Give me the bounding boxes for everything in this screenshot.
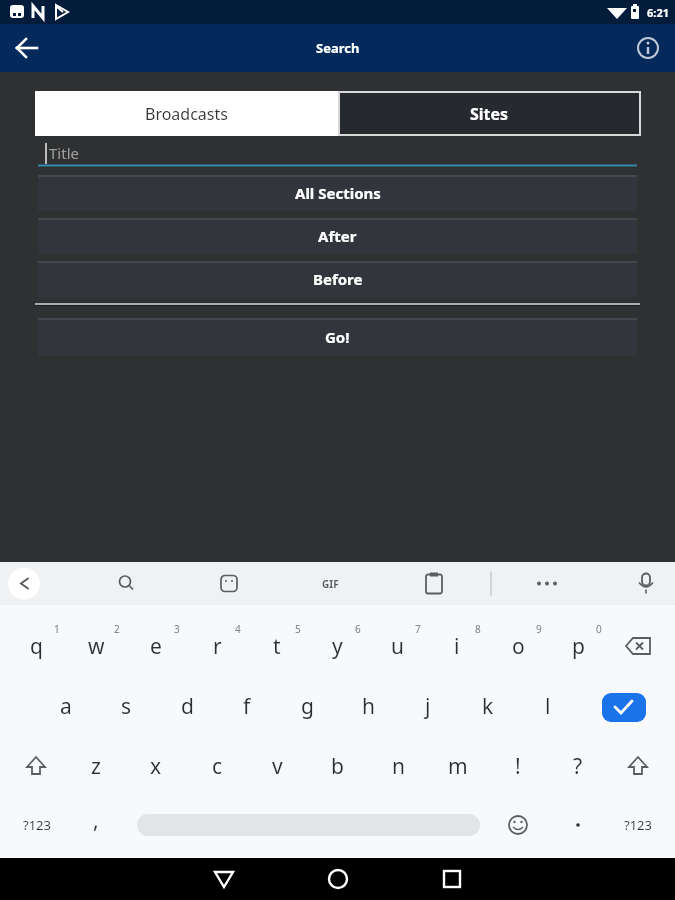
staticText: 9	[536, 622, 542, 636]
button[interactable]: !	[488, 736, 548, 796]
button[interactable]: Title	[38, 143, 637, 167]
button[interactable]	[626, 563, 666, 603]
button[interactable]: ?123	[610, 805, 666, 845]
button[interactable]	[608, 736, 668, 796]
staticText: d	[181, 692, 194, 721]
staticText: g	[301, 692, 314, 721]
staticText: !	[515, 752, 521, 781]
button[interactable]	[412, 858, 492, 900]
button[interactable]	[311, 563, 351, 603]
staticText: p	[572, 632, 585, 661]
button[interactable]: z	[66, 736, 126, 796]
button[interactable]: Sites	[338, 91, 641, 136]
button[interactable]: y	[307, 616, 367, 676]
staticText: 6:21	[647, 5, 669, 20]
button[interactable]	[13, 34, 41, 62]
staticText: o	[512, 632, 525, 661]
staticText: ?123	[23, 816, 51, 834]
button[interactable]: s	[96, 676, 156, 736]
staticText: k	[482, 692, 494, 721]
button[interactable]: w	[66, 616, 126, 676]
staticText: u	[391, 632, 404, 661]
button[interactable]	[184, 858, 264, 900]
button[interactable]: ,	[66, 790, 126, 850]
button[interactable]: v	[247, 736, 307, 796]
button[interactable]: e	[126, 616, 186, 676]
staticText: Search	[316, 39, 360, 57]
button[interactable]: b	[307, 736, 367, 796]
button[interactable]	[106, 563, 146, 603]
button[interactable]: Broadcasts	[35, 91, 338, 136]
staticText: GIF	[322, 577, 339, 591]
button[interactable]: g	[277, 676, 337, 736]
staticText: j	[425, 692, 431, 721]
staticText: s	[121, 692, 132, 721]
button[interactable]: Go!	[38, 318, 637, 356]
button[interactable]	[548, 795, 608, 855]
button[interactable]	[4, 563, 44, 603]
button[interactable]	[635, 35, 661, 61]
staticText: 0	[596, 622, 602, 636]
staticText: c	[212, 752, 223, 781]
button[interactable]	[414, 563, 454, 603]
staticText: Sites	[470, 103, 509, 125]
staticText: q	[30, 632, 43, 661]
button[interactable]: c	[187, 736, 247, 796]
button[interactable]	[488, 795, 548, 855]
button[interactable]: t	[247, 616, 307, 676]
button[interactable]: n	[368, 736, 428, 796]
button[interactable]: u	[367, 616, 427, 676]
staticText: Go!	[325, 327, 350, 347]
button[interactable]: a	[36, 676, 96, 736]
button[interactable]	[608, 616, 668, 676]
button[interactable]: i	[427, 616, 487, 676]
button[interactable]: m	[428, 736, 488, 796]
staticText: l	[545, 692, 551, 721]
button[interactable]: q	[6, 616, 66, 676]
staticText: n	[392, 752, 405, 781]
button[interactable]: ?	[548, 736, 608, 796]
staticText: a	[60, 692, 72, 721]
staticText: m	[448, 752, 468, 781]
staticText: e	[150, 632, 162, 661]
button[interactable]: d	[157, 676, 217, 736]
staticText: h	[362, 692, 375, 721]
staticText: b	[331, 752, 344, 781]
button[interactable]	[527, 563, 567, 603]
staticText: 4	[235, 622, 241, 636]
staticText: x	[150, 752, 162, 781]
button[interactable]: x	[126, 736, 186, 796]
staticText: i	[454, 632, 460, 661]
staticText: z	[91, 752, 101, 781]
staticText: f	[243, 692, 251, 721]
staticText: y	[332, 632, 343, 661]
button[interactable]	[594, 683, 650, 729]
button[interactable]	[298, 858, 378, 900]
staticText: t	[273, 632, 281, 661]
staticText: 2	[114, 622, 120, 636]
button[interactable]: Before	[38, 261, 637, 297]
button[interactable]	[137, 804, 480, 846]
button[interactable]: h	[338, 676, 398, 736]
staticText: After	[318, 226, 357, 246]
staticText: ,	[93, 806, 99, 835]
staticText: All Sections	[295, 183, 381, 203]
button[interactable]: After	[38, 218, 637, 254]
staticText: ?123	[624, 816, 652, 834]
button[interactable]	[209, 563, 249, 603]
button[interactable]: j	[398, 676, 458, 736]
button[interactable]: p	[548, 616, 608, 676]
button[interactable]: All Sections	[38, 175, 637, 211]
button[interactable]: f	[217, 676, 277, 736]
staticText: 5	[295, 622, 301, 636]
staticText: w	[88, 632, 105, 661]
button[interactable]: l	[518, 676, 578, 736]
button[interactable]	[6, 736, 66, 796]
button[interactable]: ?123	[9, 805, 65, 845]
staticText: ?	[573, 752, 583, 781]
button[interactable]: r	[187, 616, 247, 676]
staticText: 6	[355, 622, 361, 636]
staticText: 8	[475, 622, 481, 636]
button[interactable]: o	[488, 616, 548, 676]
button[interactable]: k	[458, 676, 518, 736]
